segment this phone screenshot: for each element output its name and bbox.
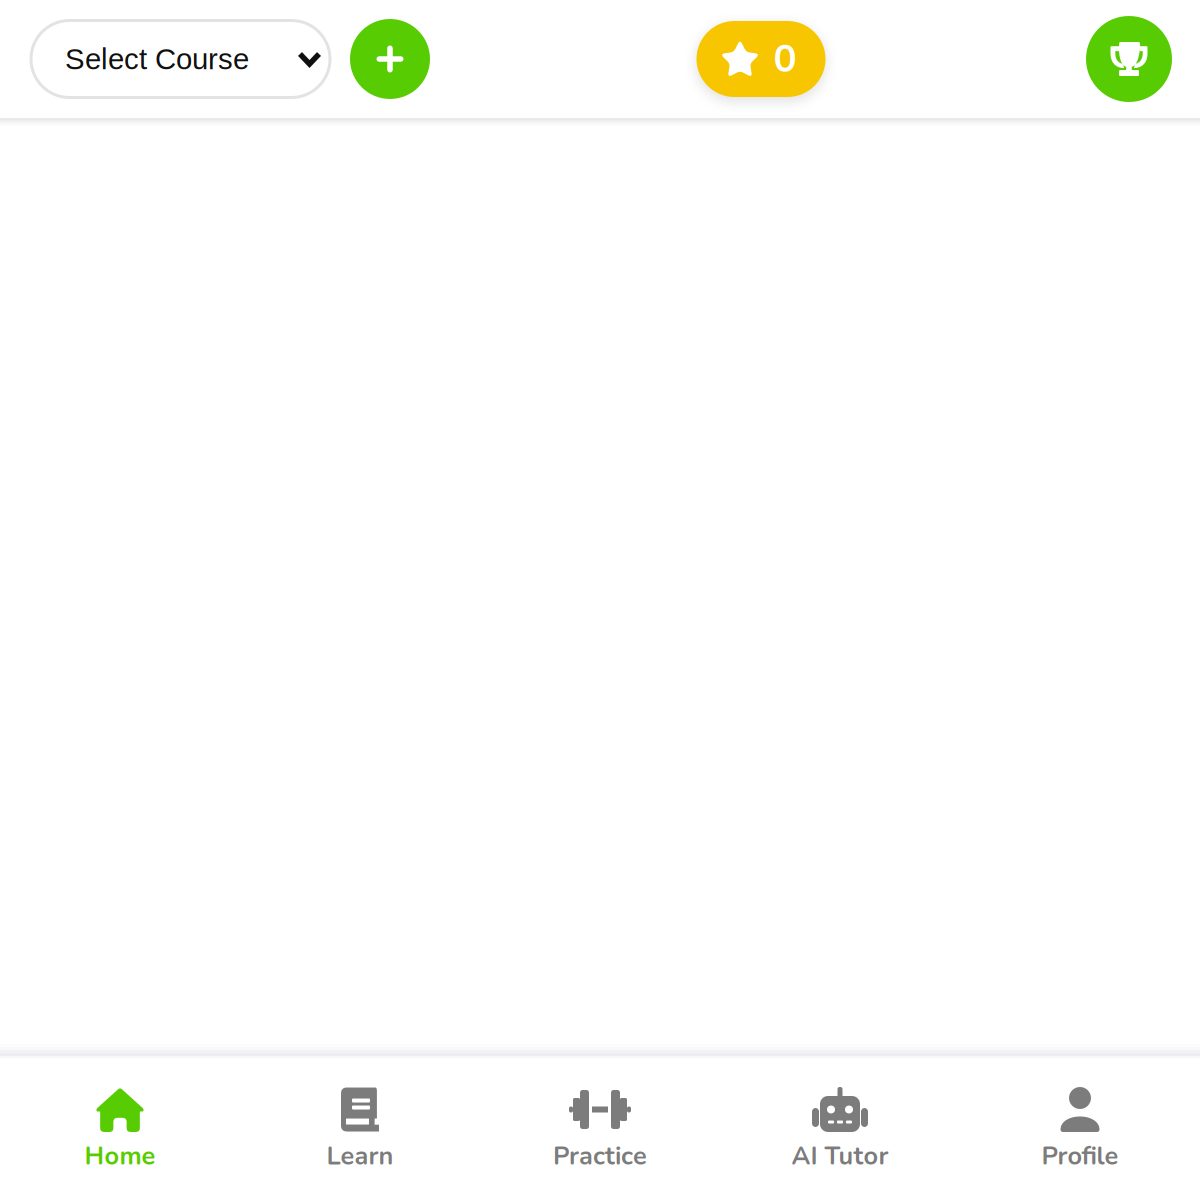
button[interactable]: Add course [350,19,430,99]
button[interactable]: Select Course [31,20,330,97]
button[interactable]: AI Tutor [720,1058,960,1200]
staticText: Practice [553,1139,647,1174]
staticText: Home [84,1139,155,1174]
button[interactable]: Profile [960,1058,1200,1200]
staticText: 0 [773,33,796,85]
button[interactable]: Learn [240,1058,480,1200]
staticText: AI Tutor [791,1139,888,1174]
staticText: Select Course [65,43,249,75]
button[interactable]: 0 [690,21,825,97]
button[interactable]: Achievements [1086,16,1172,102]
staticText: Profile [1041,1139,1118,1174]
staticText: Learn [326,1139,393,1174]
button[interactable]: Practice [480,1058,720,1200]
button[interactable]: Home [0,1058,240,1200]
